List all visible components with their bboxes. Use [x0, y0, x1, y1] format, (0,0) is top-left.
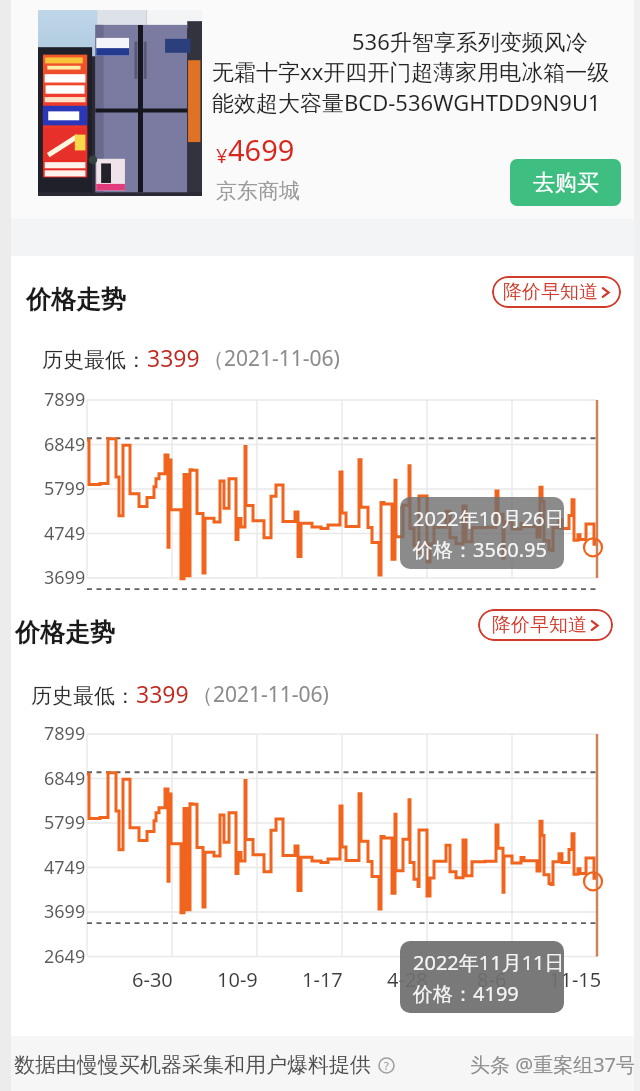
staticText: 无霜十字xx开四开门超薄家用电冰箱一级: [212, 56, 610, 86]
staticText: 6-30: [132, 966, 173, 993]
staticText: 数据由慢慢买机器采集和用户爆料提供: [14, 1052, 371, 1078]
staticText: 价格走势: [15, 617, 115, 648]
staticText: 3699: [44, 565, 86, 590]
staticText: 4699: [228, 130, 295, 169]
staticText: 4749: [44, 521, 86, 546]
button[interactable]: 降价早知道: [478, 609, 613, 641]
staticText: 536升智享系列变频风冷: [352, 26, 588, 56]
staticText: 1-17: [302, 966, 343, 993]
staticText: 能效超大容量BCD-536WGHTDD9N9U1: [212, 87, 601, 117]
staticText: 京东商城: [216, 178, 300, 204]
staticText: 价格：3560.95: [413, 536, 547, 563]
staticText: 3399: [136, 678, 189, 709]
staticText: 8-6: [477, 966, 507, 993]
staticText: 3699: [44, 899, 86, 924]
staticText: 价格：4199: [413, 980, 519, 1007]
staticText: 5799: [44, 476, 86, 501]
staticText: 5799: [44, 810, 86, 835]
staticText: ?: [384, 1058, 389, 1073]
staticText: 3399: [147, 342, 200, 373]
button[interactable]: 去购买: [510, 159, 621, 206]
staticText: 6849: [44, 766, 86, 791]
staticText: 7899: [44, 387, 86, 412]
staticText: 4749: [44, 855, 86, 880]
staticText: （2021-11-06): [192, 680, 329, 709]
staticText: （2021-11-06): [203, 344, 340, 373]
staticText: 价格走势: [26, 284, 126, 315]
staticText: ¥: [216, 142, 228, 169]
button[interactable]: 降价早知道: [492, 276, 621, 308]
staticText: 2649: [44, 944, 86, 969]
staticText: 10-9: [217, 966, 258, 993]
staticText: 11-15: [549, 966, 602, 993]
staticText: 7899: [44, 721, 86, 746]
staticText: 2022年11月11日: [413, 949, 564, 976]
staticText: 头条 @重案组37号: [470, 1051, 637, 1078]
staticText: 降价早知道: [492, 613, 587, 637]
staticText: 2022年10月26日: [413, 505, 564, 532]
staticText: 历史最低：: [31, 683, 136, 709]
staticText: 去购买: [533, 169, 599, 197]
staticText: 降价早知道: [503, 280, 598, 304]
staticText: 历史最低：: [42, 347, 147, 373]
staticText: 6849: [44, 432, 86, 457]
staticText: 4-28: [387, 966, 428, 993]
